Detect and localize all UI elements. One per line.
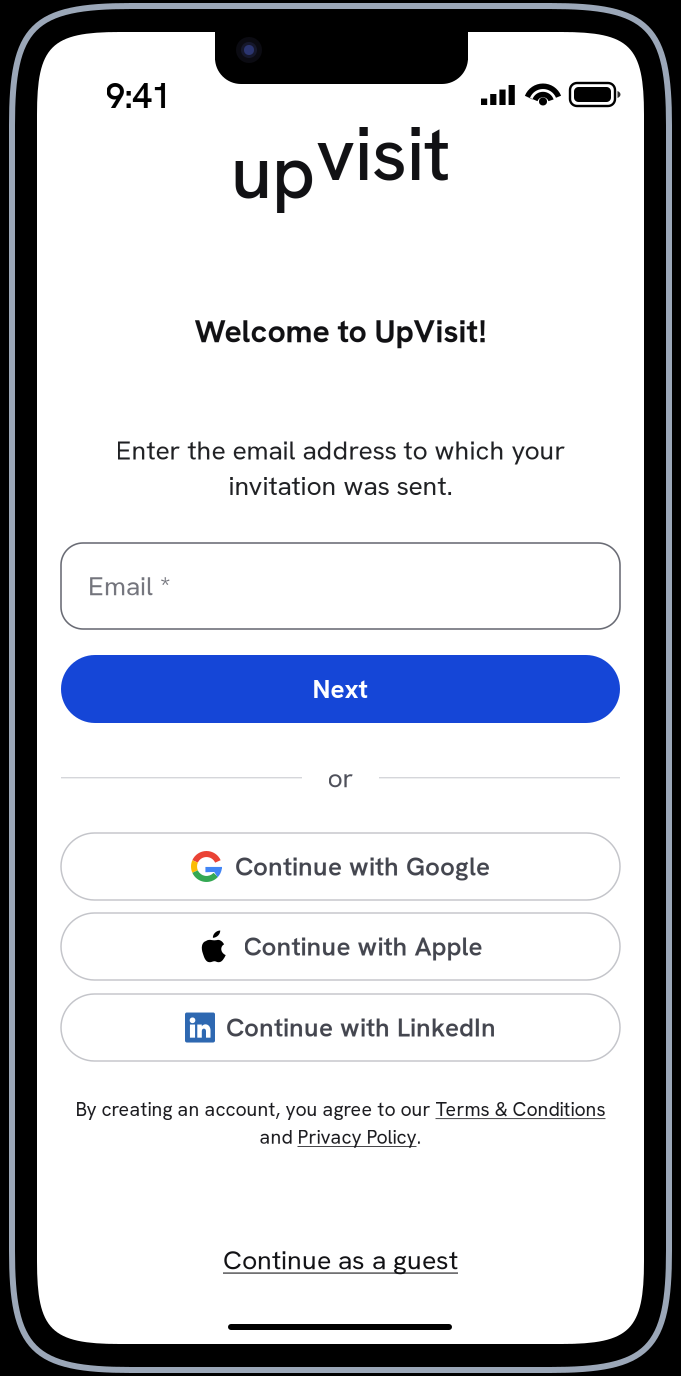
staticText: Continue with LinkedIn [226,1011,496,1044]
button[interactable]: Email * [61,543,620,629]
button[interactable]: Continue with Google [61,833,620,900]
staticText: Email * [88,569,171,603]
staticText: visit [316,105,450,203]
staticText: and Privacy Policy. [259,1124,421,1149]
button[interactable]: Continue with LinkedIn [61,994,620,1061]
staticText: Enter the email address to which your [115,433,565,467]
button[interactable]: Continue as a guest [37,1238,644,1282]
staticText: Continue as a guest [223,1243,458,1277]
staticText: Continue with Apple [243,930,482,963]
staticText: Welcome to UpVisit! [194,310,486,352]
staticText: invitation was sent. [228,468,452,503]
button[interactable]: Next [61,655,620,723]
staticText: 9:41 [105,73,170,119]
staticText: or [327,761,353,795]
staticText: up [231,123,316,221]
button[interactable]: Continue with Apple [61,913,620,980]
staticText: Next [312,672,368,706]
staticText: By creating an account, you agree to our… [75,1097,605,1121]
staticText: Continue with Google [235,850,490,883]
